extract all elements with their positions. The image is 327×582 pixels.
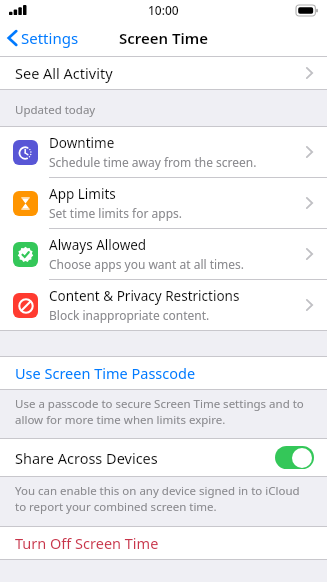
button[interactable]: Always Allowed <box>0 229 327 279</box>
staticText: Updated today <box>15 102 96 118</box>
staticText: Schedule time away from the screen. <box>49 154 257 170</box>
button[interactable]: Content & Privacy Restrictions <box>0 280 327 330</box>
staticText: Block inappropriate content. <box>49 307 210 323</box>
staticText: Downtime <box>49 134 115 152</box>
staticText: Share Across Devices <box>15 448 275 468</box>
button[interactable]: Share Across Devices toggle, on <box>275 446 314 469</box>
staticText: Use Screen Time Passcode <box>15 363 196 383</box>
staticText: See All Activity <box>15 63 113 83</box>
staticText: You can enable this on any device signed… <box>15 483 309 514</box>
button[interactable]: Share Across Devices <box>0 439 327 476</box>
button[interactable]: See All Activity <box>0 57 327 89</box>
staticText: Settings <box>21 28 79 48</box>
staticText: Always Allowed <box>49 236 147 254</box>
button[interactable]: Settings <box>0 24 87 52</box>
staticText: Choose apps you want at all times. <box>49 256 245 272</box>
button[interactable]: Turn Off Screen Time <box>0 527 327 559</box>
staticText: App Limits <box>49 185 116 203</box>
staticText: Turn Off Screen Time <box>15 533 159 553</box>
staticText: Set time limits for apps. <box>49 205 182 221</box>
staticText: 10:00 <box>148 2 179 18</box>
button[interactable]: Use Screen Time Passcode <box>0 357 327 389</box>
staticText: Use a passcode to secure Screen Time set… <box>15 396 309 427</box>
staticText: Screen Time <box>119 28 208 48</box>
staticText: Content & Privacy Restrictions <box>49 287 240 305</box>
button[interactable]: App Limits <box>0 178 327 228</box>
button[interactable]: Downtime <box>0 127 327 177</box>
